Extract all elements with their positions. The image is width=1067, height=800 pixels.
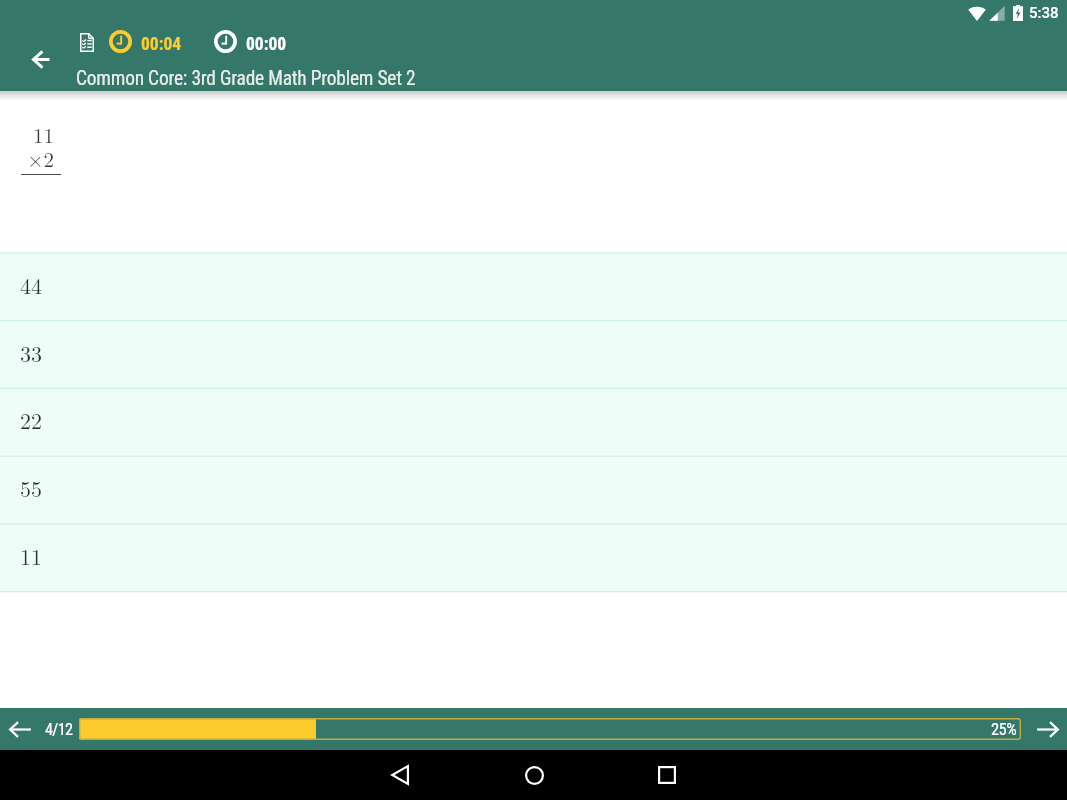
staticText: 44 — [20, 269, 43, 300]
button[interactable]: 33 — [0, 321, 1067, 389]
staticText: 00:00 — [246, 34, 287, 55]
staticText: 4/12 — [45, 720, 73, 739]
button[interactable]: Back — [376, 750, 424, 800]
button[interactable]: Next question — [1027, 708, 1067, 750]
button[interactable]: Recent apps — [643, 750, 691, 800]
button[interactable]: 22 — [0, 388, 1067, 456]
button[interactable]: Back — [22, 40, 61, 79]
staticText: Common Core: 3rd Grade Math Problem Set … — [76, 67, 416, 90]
staticText: 25% — [991, 720, 1017, 739]
staticText: ×2 — [14, 143, 54, 173]
staticText: 00:04 — [141, 34, 182, 55]
staticText: 11 — [20, 540, 43, 571]
button[interactable]: 55 — [0, 456, 1067, 524]
button[interactable]: 44 — [0, 253, 1067, 321]
staticText: 55 — [20, 472, 43, 503]
staticText: 5:38 — [1029, 4, 1059, 22]
button[interactable]: Home — [510, 750, 558, 800]
staticText: 11 — [14, 119, 54, 149]
staticText: 22 — [20, 404, 43, 435]
button[interactable]: 11 — [0, 524, 1067, 592]
button[interactable]: Previous question — [0, 708, 41, 750]
staticText: 33 — [20, 337, 43, 368]
